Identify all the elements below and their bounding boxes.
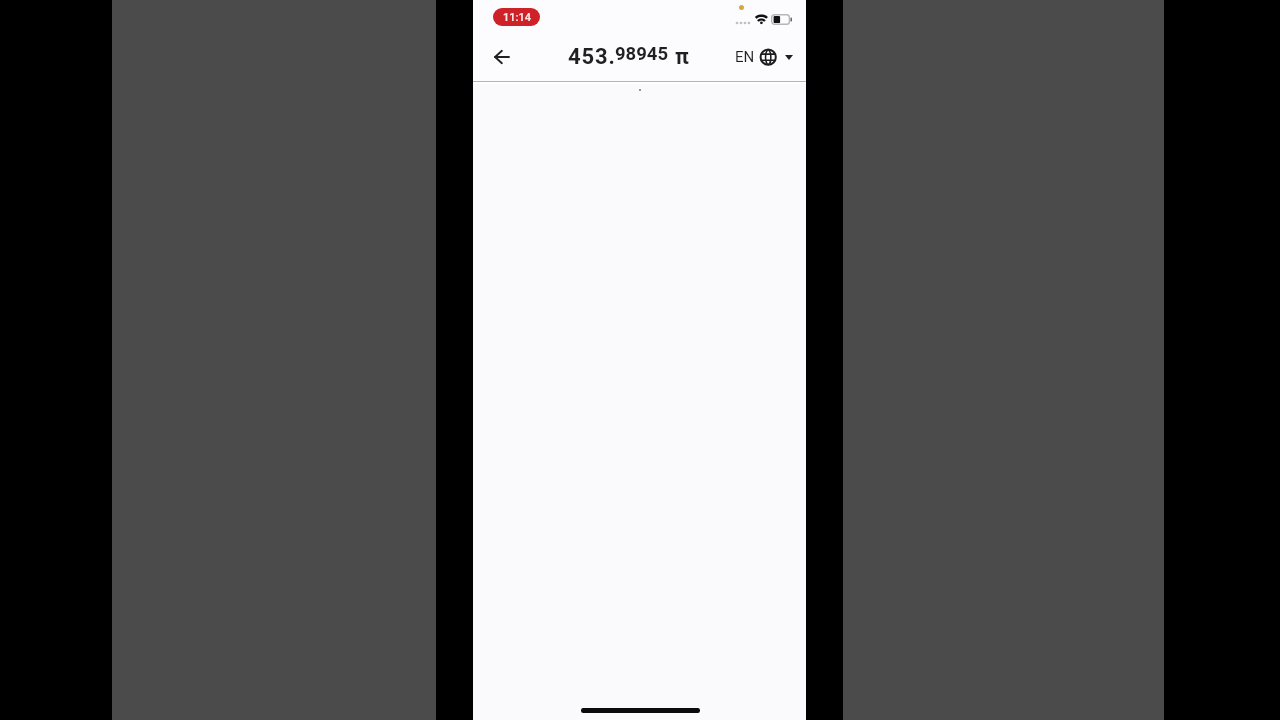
staticText: 11:14: [503, 11, 531, 24]
button[interactable]: Change language: [729, 37, 800, 76]
staticText: EN: [735, 48, 755, 66]
staticText: 453.: [568, 44, 616, 70]
staticText: π: [675, 44, 689, 69]
staticText: 98945: [615, 43, 669, 65]
button[interactable]: Back: [482, 37, 522, 77]
